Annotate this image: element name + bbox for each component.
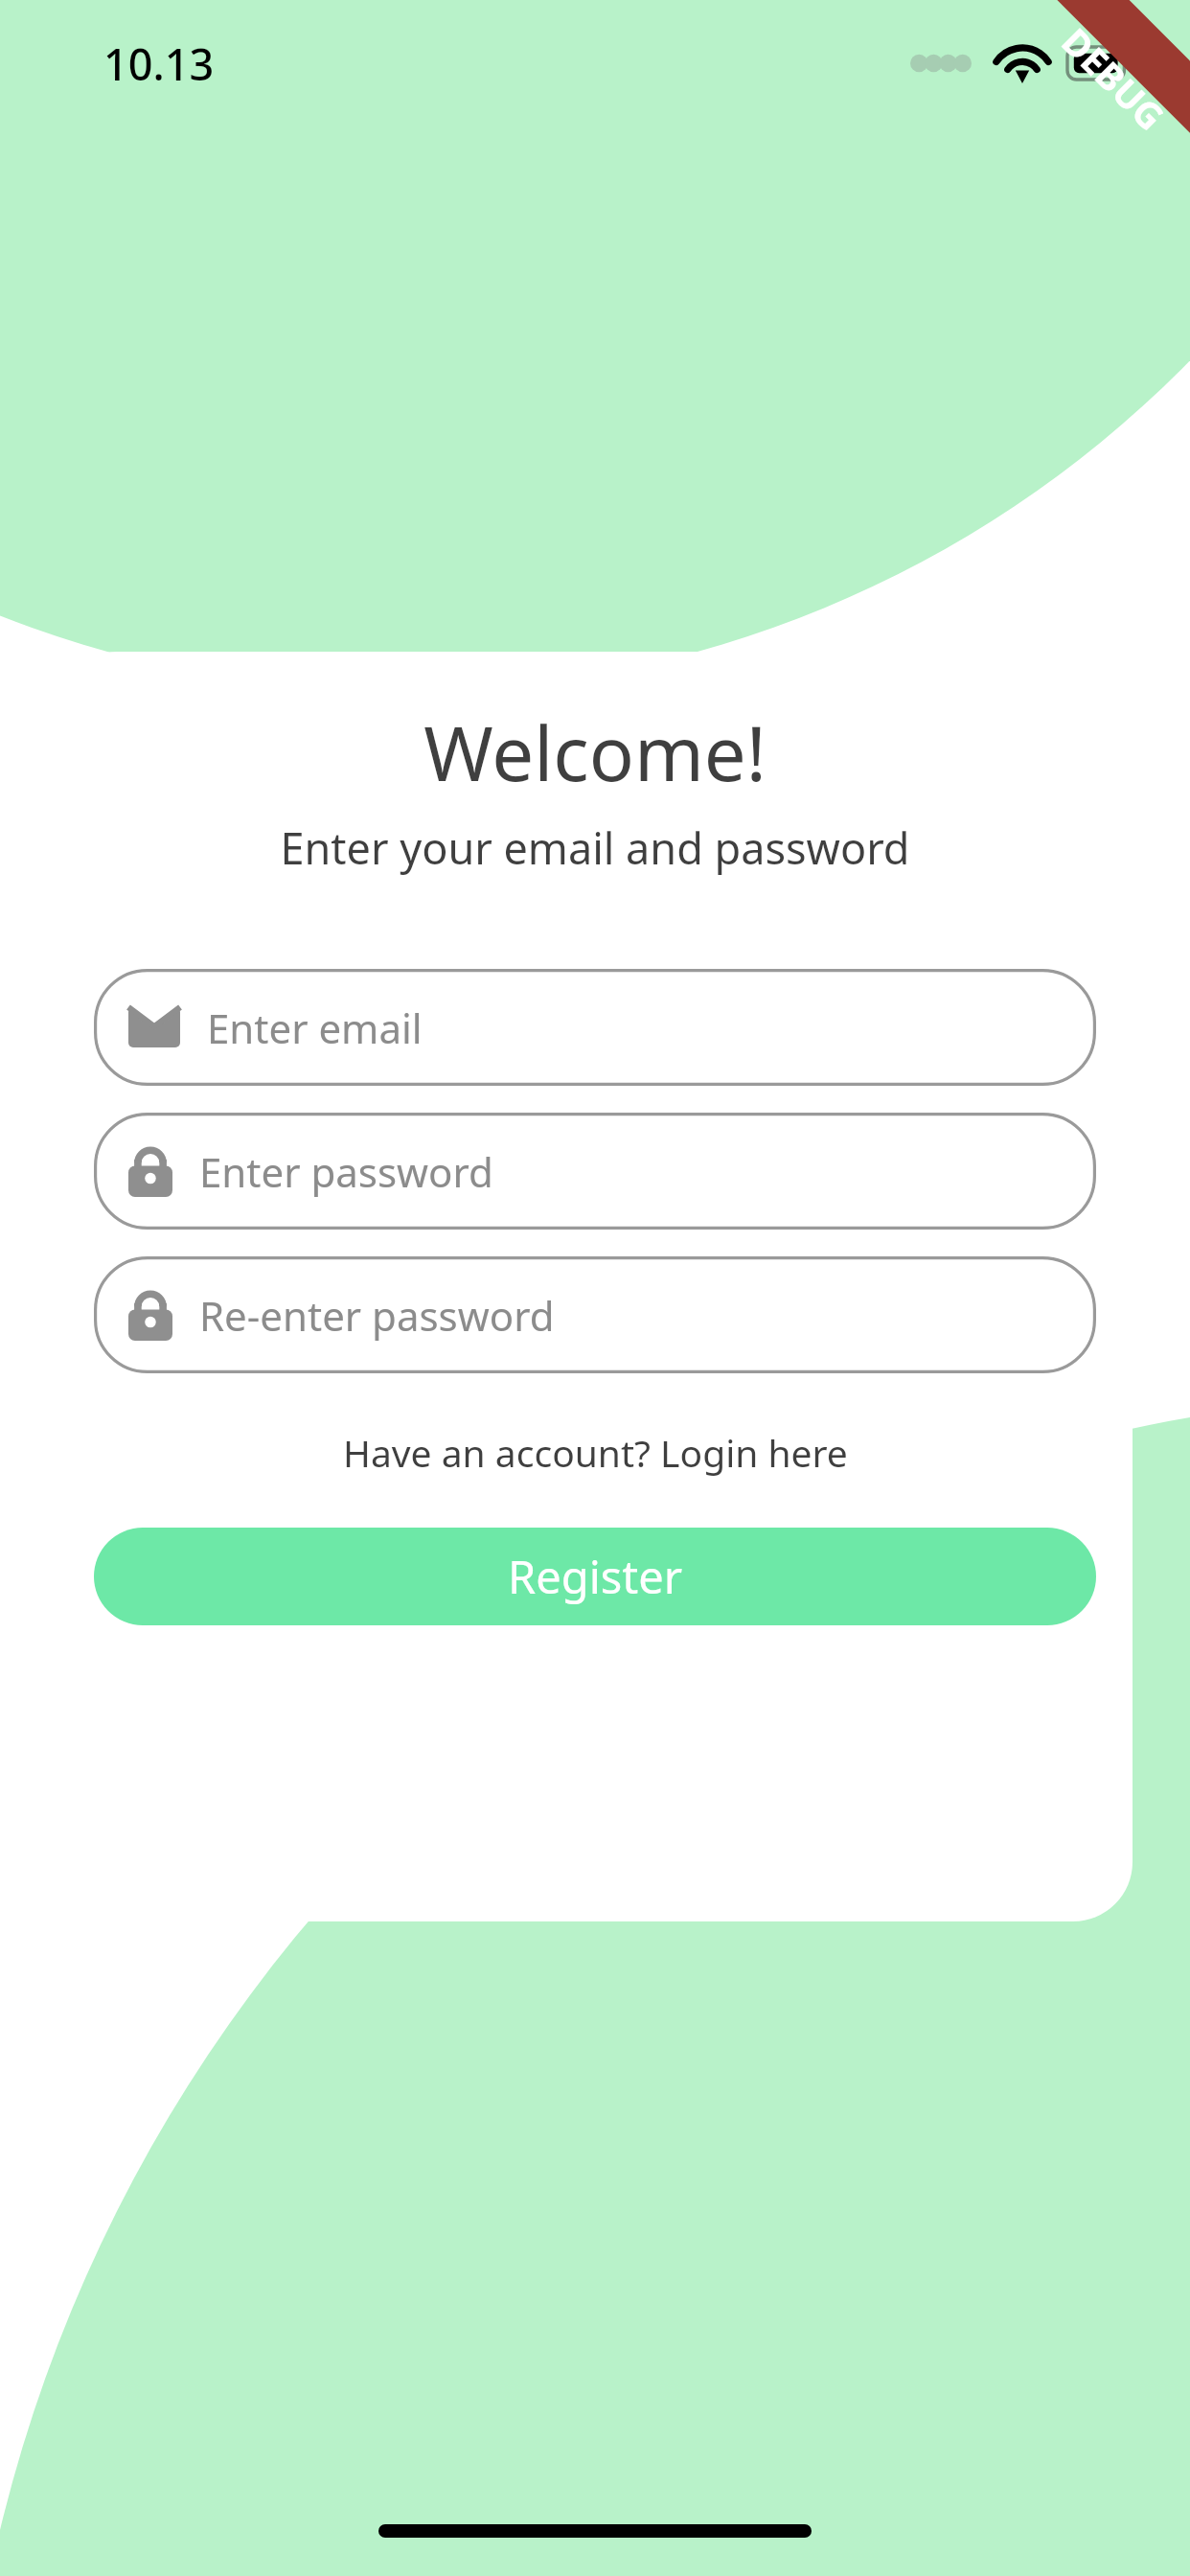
staticText: Enter your email and password: [280, 818, 910, 877]
staticText: 10.13: [103, 34, 215, 93]
staticText: Welcome!: [423, 701, 767, 803]
staticText: Have an account? Login here: [343, 1427, 848, 1478]
staticText: Enter password: [199, 1144, 493, 1199]
button[interactable]: Email: [94, 969, 1096, 1086]
staticText: DEBUG: [1052, 17, 1176, 141]
staticText: Re-enter password: [199, 1288, 555, 1343]
button[interactable]: Password: [94, 1113, 1096, 1230]
other: Email: [128, 1007, 180, 1047]
staticText: Enter email: [207, 1000, 423, 1055]
staticText: Register: [508, 1546, 683, 1607]
other: Password: [128, 1145, 172, 1197]
button[interactable]: Register: [94, 1528, 1096, 1625]
other: Password: [128, 1289, 172, 1341]
button[interactable]: Password: [94, 1256, 1096, 1373]
button[interactable]: Have an account? Login here: [332, 1417, 859, 1487]
